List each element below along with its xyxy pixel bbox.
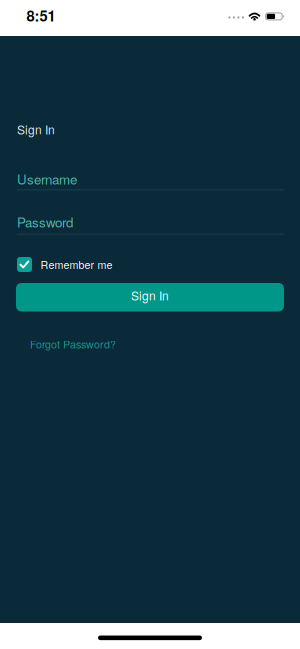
staticText: Sign In [17,121,55,138]
button[interactable]: Forgot Password? [30,336,116,351]
button[interactable]: Remember me [17,257,112,272]
staticText: Sign In [131,287,169,304]
button[interactable]: Sign In [16,283,284,311]
staticText: Remember me [40,257,112,272]
button[interactable]: Password [17,212,284,236]
staticText: 8:51 [26,5,55,26]
staticText: Forgot Password? [30,336,116,351]
staticText: Username [17,169,77,188]
button[interactable]: Username [17,169,284,193]
staticText: Password [17,212,73,231]
